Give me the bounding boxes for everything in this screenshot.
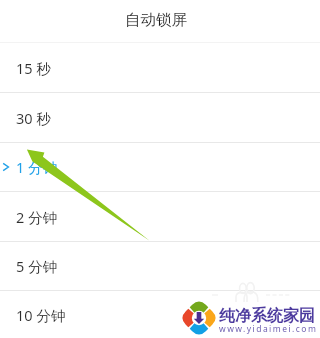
staticText: 自动锁屏 <box>125 10 187 30</box>
button[interactable]: 1 分钟 <box>0 143 320 191</box>
button[interactable]: 15 秒 <box>0 43 320 92</box>
staticText: 30 秒 <box>16 108 51 128</box>
staticText: 15 秒 <box>16 58 51 78</box>
staticText: 1 分钟 <box>16 157 58 177</box>
staticText: 2 分钟 <box>16 207 58 227</box>
staticText: 5 分钟 <box>16 256 58 276</box>
staticText: 10 分钟 <box>16 305 66 325</box>
button[interactable]: 5 分钟 <box>0 242 320 290</box>
staticText: 纯净系统家园 <box>219 306 315 326</box>
staticText: www.yidaimei.com <box>219 323 318 335</box>
button[interactable]: 2 分钟 <box>0 192 320 241</box>
button[interactable]: 10 分钟 <box>0 291 320 338</box>
button[interactable]: 30 秒 <box>0 93 320 142</box>
